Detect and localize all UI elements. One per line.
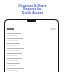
button[interactable] — [5, 32, 58, 37]
button[interactable] — [5, 67, 58, 72]
staticText: Organize & Share Reports for Quick Acces… — [18, 3, 47, 15]
button[interactable] — [5, 37, 58, 42]
button[interactable] — [5, 42, 58, 47]
button[interactable] — [5, 57, 58, 62]
button[interactable] — [5, 62, 58, 67]
button[interactable] — [5, 47, 58, 52]
button[interactable] — [5, 52, 58, 57]
button[interactable]: Search — [50, 28, 56, 30]
